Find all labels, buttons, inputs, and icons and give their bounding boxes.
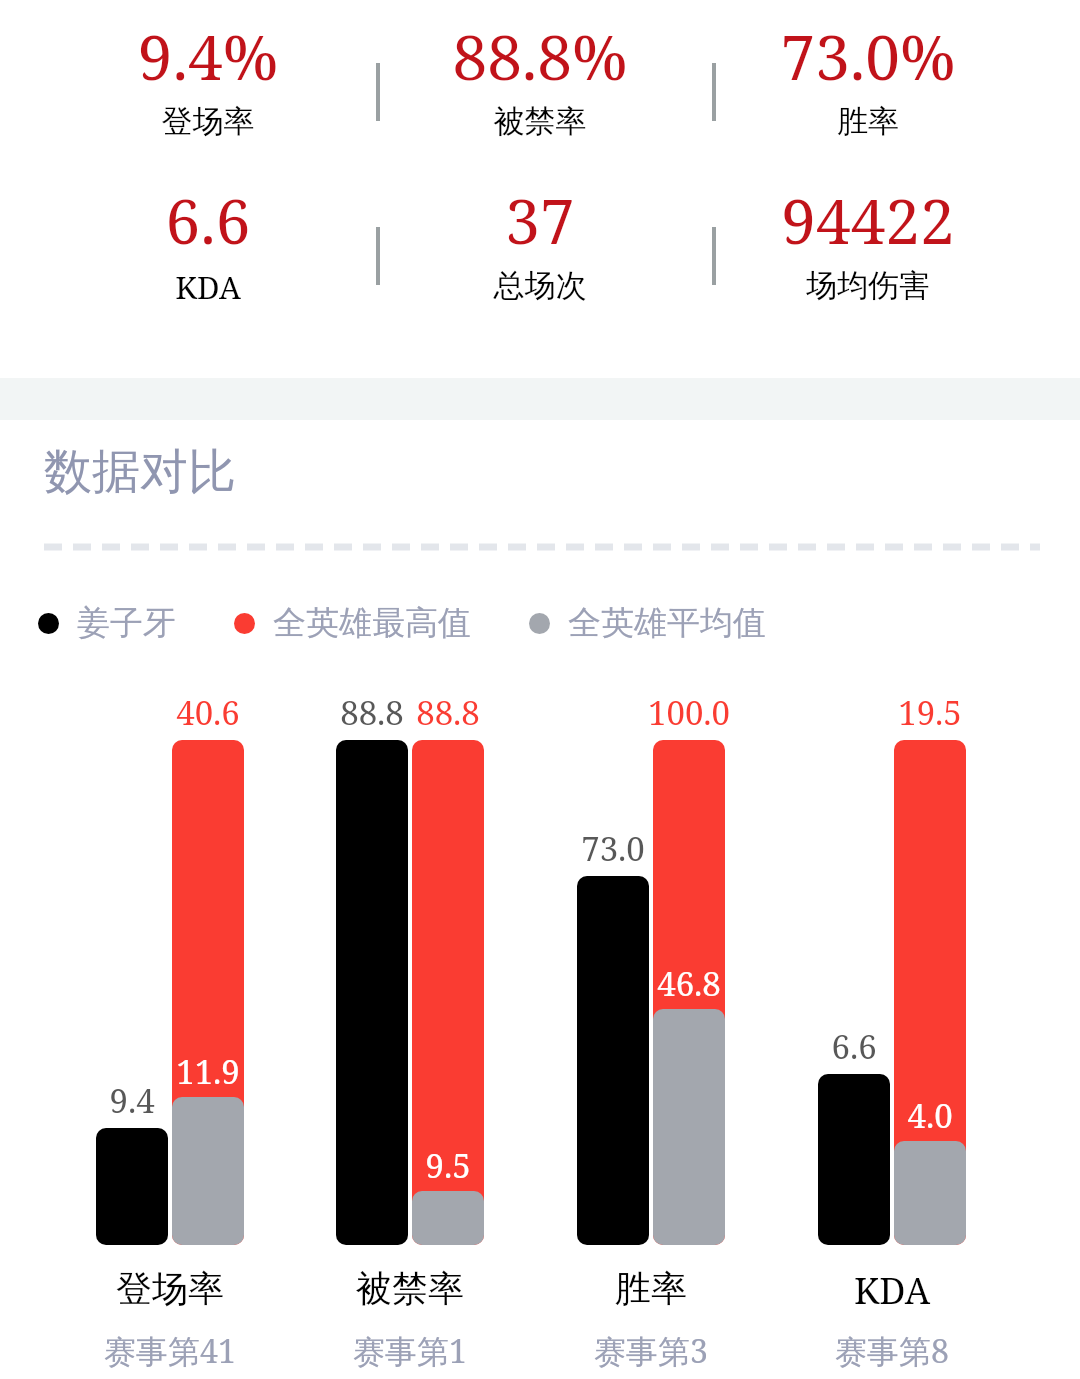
button[interactable]: 姜子牙 xyxy=(38,602,176,644)
staticText: 场均伤害 xyxy=(698,266,1038,305)
staticText: 9.5 xyxy=(398,1143,498,1188)
button[interactable]: 全英雄最高值 胜率 100.0 xyxy=(653,740,725,1245)
staticText: 9.4% xyxy=(38,14,378,98)
button[interactable]: 9.4% xyxy=(38,14,378,141)
button[interactable]: 数据对比 xyxy=(44,442,236,502)
staticText: 赛事第3 xyxy=(521,1329,781,1373)
staticText: 94422 xyxy=(698,178,1038,262)
button[interactable]: 全英雄最高值 xyxy=(234,602,471,644)
button[interactable]: 姜子牙 登场率 9.4 xyxy=(96,1128,168,1245)
staticText: 赛事第8 xyxy=(762,1329,1022,1373)
button[interactable]: 全英雄最高值 被禁率 88.8 xyxy=(412,740,484,1245)
button[interactable]: 88.8% xyxy=(370,14,710,141)
staticText: 6.6 xyxy=(798,1024,910,1069)
button[interactable]: 姜子牙 KDA 6.6 xyxy=(818,1074,890,1245)
staticText: 赛事第41 xyxy=(40,1329,300,1373)
staticText: 37 xyxy=(370,178,710,262)
staticText: KDA xyxy=(38,266,378,308)
staticText: 姜子牙 xyxy=(77,602,176,644)
staticText: 赛事第1 xyxy=(280,1329,540,1373)
staticText: KDA xyxy=(762,1266,1022,1315)
staticText: 登场率 xyxy=(38,102,378,141)
staticText: 总场次 xyxy=(370,266,710,305)
staticText: 数据对比 xyxy=(44,442,236,502)
staticText: 73.0% xyxy=(698,14,1038,98)
staticText: 被禁率 xyxy=(280,1266,540,1311)
button[interactable]: 全英雄最高值 登场率 40.6 xyxy=(172,740,244,1245)
staticText: 46.8 xyxy=(639,961,739,1006)
button[interactable]: 73.0% xyxy=(698,14,1038,141)
staticText: 88.8% xyxy=(370,14,710,98)
staticText: 88.8 xyxy=(392,690,504,735)
staticText: 登场率 xyxy=(40,1266,300,1311)
staticText: 88.8 xyxy=(316,690,428,735)
button[interactable]: 94422 xyxy=(698,178,1038,305)
button[interactable]: 全英雄最高值 KDA 19.5 xyxy=(894,740,966,1245)
staticText: 19.5 xyxy=(874,690,986,735)
button[interactable]: 姜子牙 被禁率 88.8 xyxy=(336,740,408,1245)
staticText: 4.0 xyxy=(880,1093,980,1138)
button[interactable]: 姜子牙 胜率 73.0 xyxy=(577,876,649,1245)
button[interactable]: 全英雄平均值 xyxy=(529,602,766,644)
staticText: 40.6 xyxy=(152,690,264,735)
button[interactable]: 37 xyxy=(370,178,710,305)
staticText: 9.4 xyxy=(76,1078,188,1123)
button[interactable]: 6.6 xyxy=(38,178,378,308)
staticText: 11.9 xyxy=(158,1049,258,1094)
staticText: 6.6 xyxy=(38,178,378,262)
staticText: 胜率 xyxy=(698,102,1038,141)
staticText: 被禁率 xyxy=(370,102,710,141)
staticText: 73.0 xyxy=(557,826,669,871)
staticText: 胜率 xyxy=(521,1266,781,1311)
staticText: 全英雄平均值 xyxy=(568,602,766,644)
staticText: 100.0 xyxy=(633,690,745,735)
staticText: 全英雄最高值 xyxy=(273,602,471,644)
